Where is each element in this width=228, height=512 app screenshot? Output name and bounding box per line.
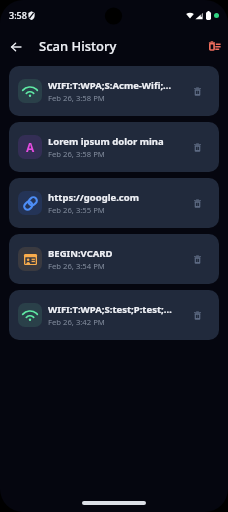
button[interactable]: Delete [186,304,208,326]
button[interactable]: https://google.com [9,178,219,228]
staticText: Lorem ipsum dolor mina [48,135,164,148]
staticText: 3:58 [9,9,27,21]
staticText: A [26,139,35,155]
button[interactable]: A [9,122,219,172]
staticText: Scan History [39,37,117,55]
staticText: BEGIN:VCARD [48,247,113,260]
button[interactable]: Delete [186,248,208,270]
staticText: Feb 26, 3:55 PM [48,205,105,215]
staticText: WIFI:T:WPA;S:test;P:test;… [48,303,172,316]
staticText: Feb 26, 3:58 PM [48,149,105,159]
staticText: Feb 26, 3:54 PM [48,261,105,271]
button[interactable]: WIFI:T:WPA;S:Acme-Wifi;… [9,66,219,116]
button[interactable]: Delete all history [203,35,225,57]
button[interactable]: BEGIN:VCARD [9,234,219,284]
staticText: https://google.com [48,191,139,204]
button[interactable]: Back [5,36,26,57]
staticText: WIFI:T:WPA;S:Acme-Wifi;… [48,79,172,92]
button[interactable]: Delete [186,80,208,102]
button[interactable]: Delete [186,192,208,214]
staticText: Feb 26, 3:58 PM [48,93,105,103]
button[interactable]: WIFI:T:WPA;S:test;P:test;… [9,290,219,340]
button[interactable]: Delete [186,136,208,158]
staticText: Feb 26, 3:42 PM [48,317,105,327]
